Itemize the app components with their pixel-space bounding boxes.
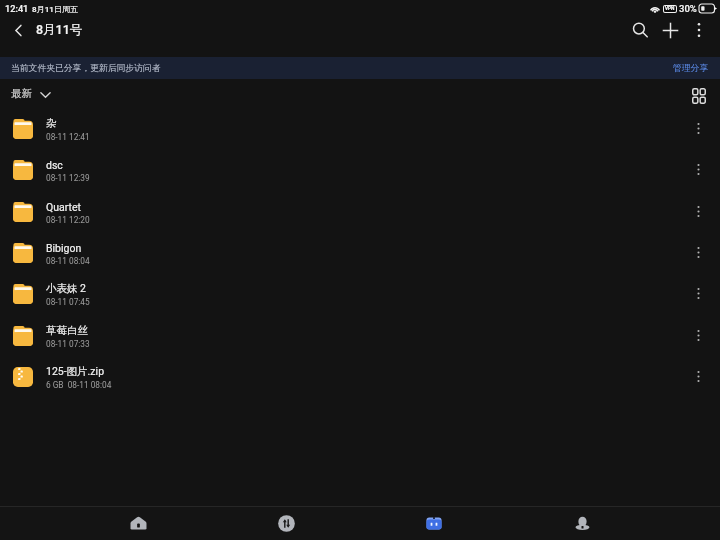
staticText: 12:41 — [5, 3, 29, 14]
button[interactable]: Transfers — [212, 507, 360, 540]
staticText: 管理分享 — [673, 63, 709, 74]
button[interactable]: More options — [683, 108, 713, 149]
staticText: Bibigon — [46, 242, 82, 254]
button[interactable]: 杂 — [0, 108, 720, 149]
button[interactable]: 管理分享 — [662, 57, 720, 79]
button[interactable]: More options — [683, 356, 713, 397]
button[interactable]: 最新 — [11, 87, 51, 100]
button[interactable]: Home — [64, 507, 212, 540]
button[interactable]: More options — [683, 315, 713, 356]
staticText: 草莓白丝 — [46, 324, 88, 337]
staticText: 08-11 07:45 — [46, 297, 90, 307]
button[interactable]: More options — [683, 273, 713, 314]
staticText: Quartet — [46, 201, 81, 213]
button[interactable]: Files — [360, 507, 508, 540]
staticText: 30% — [679, 3, 697, 14]
button[interactable]: Back — [0, 17, 36, 43]
button[interactable]: Bibigon — [0, 232, 720, 273]
staticText: 8月11日周五 — [32, 4, 79, 14]
button[interactable]: Add — [654, 17, 686, 43]
staticText: 小表妹 2 — [46, 282, 87, 295]
staticText: VPN — [665, 6, 675, 12]
button[interactable]: More options — [683, 191, 713, 232]
button[interactable]: Quartet — [0, 191, 720, 232]
staticText: 08-11 07:33 — [46, 339, 90, 349]
button[interactable]: Profile — [508, 507, 656, 540]
staticText: 8月11号 — [36, 22, 83, 38]
button[interactable]: More options — [683, 232, 713, 273]
staticText: 08-11 12:41 — [46, 132, 90, 142]
staticText: 当前文件夹已分享，更新后同步访问者 — [11, 63, 161, 74]
staticText: 08-11 12:20 — [46, 215, 90, 225]
staticText: 125-图片.zip — [46, 365, 105, 378]
staticText: dsc — [46, 159, 63, 171]
staticText: 08-11 12:39 — [46, 173, 90, 183]
staticText: 杂 — [46, 117, 57, 130]
button[interactable]: 草莓白丝 — [0, 315, 720, 356]
button[interactable]: 小表妹 2 — [0, 273, 720, 314]
button[interactable]: Search — [625, 17, 654, 43]
staticText: 08-11 08:04 — [46, 256, 90, 266]
button[interactable]: Grid view — [686, 83, 712, 109]
button[interactable]: More options — [683, 149, 713, 190]
staticText: 6 GB 08-11 08:04 — [46, 380, 112, 390]
button[interactable]: 125-图片.zip — [0, 356, 720, 397]
button[interactable]: More options — [686, 17, 712, 43]
button[interactable]: dsc — [0, 149, 720, 190]
staticText: 最新 — [11, 87, 32, 100]
